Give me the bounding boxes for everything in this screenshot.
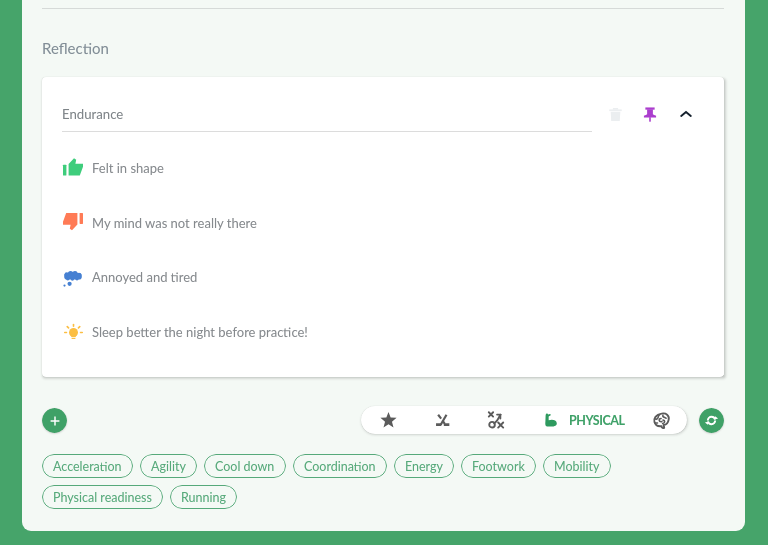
staticText: Cool down bbox=[215, 459, 275, 474]
staticText: Endurance bbox=[62, 106, 124, 122]
button[interactable]: Energy bbox=[394, 454, 454, 478]
button[interactable]: Sleep better the night before practice! bbox=[42, 313, 724, 351]
button[interactable]: Running bbox=[170, 485, 237, 509]
button[interactable]: Collapse bbox=[673, 101, 699, 127]
button[interactable]: Pin bbox=[637, 101, 663, 127]
button[interactable]: Acceleration bbox=[42, 454, 133, 478]
button[interactable]: Felt in shape bbox=[42, 149, 724, 187]
staticText: Mobility bbox=[554, 459, 600, 474]
button[interactable]: Add bbox=[42, 408, 67, 433]
staticText: Running bbox=[181, 490, 226, 505]
button[interactable]: Footwork bbox=[461, 454, 536, 478]
button[interactable]: Agility bbox=[140, 454, 197, 478]
button[interactable]: Cool down bbox=[204, 454, 286, 478]
staticText: PHYSICAL bbox=[569, 413, 625, 428]
button[interactable]: Favourites bbox=[361, 406, 415, 434]
staticText: My mind was not really there bbox=[92, 215, 257, 231]
staticText: Footwork bbox=[472, 459, 525, 474]
staticText: Acceleration bbox=[53, 459, 122, 474]
button[interactable]: Mobility bbox=[543, 454, 611, 478]
button[interactable]: Physical readiness bbox=[42, 485, 163, 509]
staticText: Coordination bbox=[304, 459, 376, 474]
button[interactable]: My mind was not really there bbox=[42, 204, 724, 242]
button[interactable]: Coordination bbox=[293, 454, 387, 478]
button[interactable]: PHYSICAL bbox=[523, 406, 635, 434]
button[interactable]: Tactical bbox=[469, 406, 523, 434]
staticText: Sleep better the night before practice! bbox=[92, 324, 308, 340]
button[interactable]: Technical bbox=[415, 406, 469, 434]
staticText: Annoyed and tired bbox=[92, 269, 198, 285]
staticText: Energy bbox=[405, 459, 443, 474]
staticText: Reflection bbox=[42, 39, 109, 57]
button[interactable]: Mental bbox=[635, 406, 687, 434]
button[interactable]: Delete bbox=[602, 101, 628, 127]
button[interactable]: Refresh bbox=[699, 408, 724, 433]
staticText: Physical readiness bbox=[53, 490, 152, 505]
staticText: Agility bbox=[151, 459, 186, 474]
button[interactable]: Annoyed and tired bbox=[42, 258, 724, 296]
staticText: Felt in shape bbox=[92, 160, 164, 176]
